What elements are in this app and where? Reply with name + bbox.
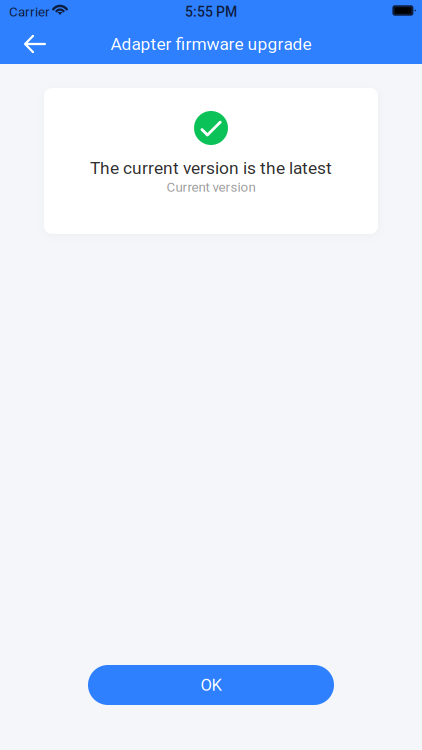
staticText: OK — [200, 675, 221, 695]
staticText: Adapter firmware upgrade — [110, 34, 311, 54]
staticText: Carrier — [9, 4, 50, 20]
button[interactable]: Back — [12, 24, 58, 64]
button[interactable]: OK — [88, 665, 334, 705]
staticText: 5:55 PM — [185, 4, 237, 20]
staticText: The current version is the latest — [90, 158, 332, 178]
staticText: Current version — [166, 179, 255, 195]
